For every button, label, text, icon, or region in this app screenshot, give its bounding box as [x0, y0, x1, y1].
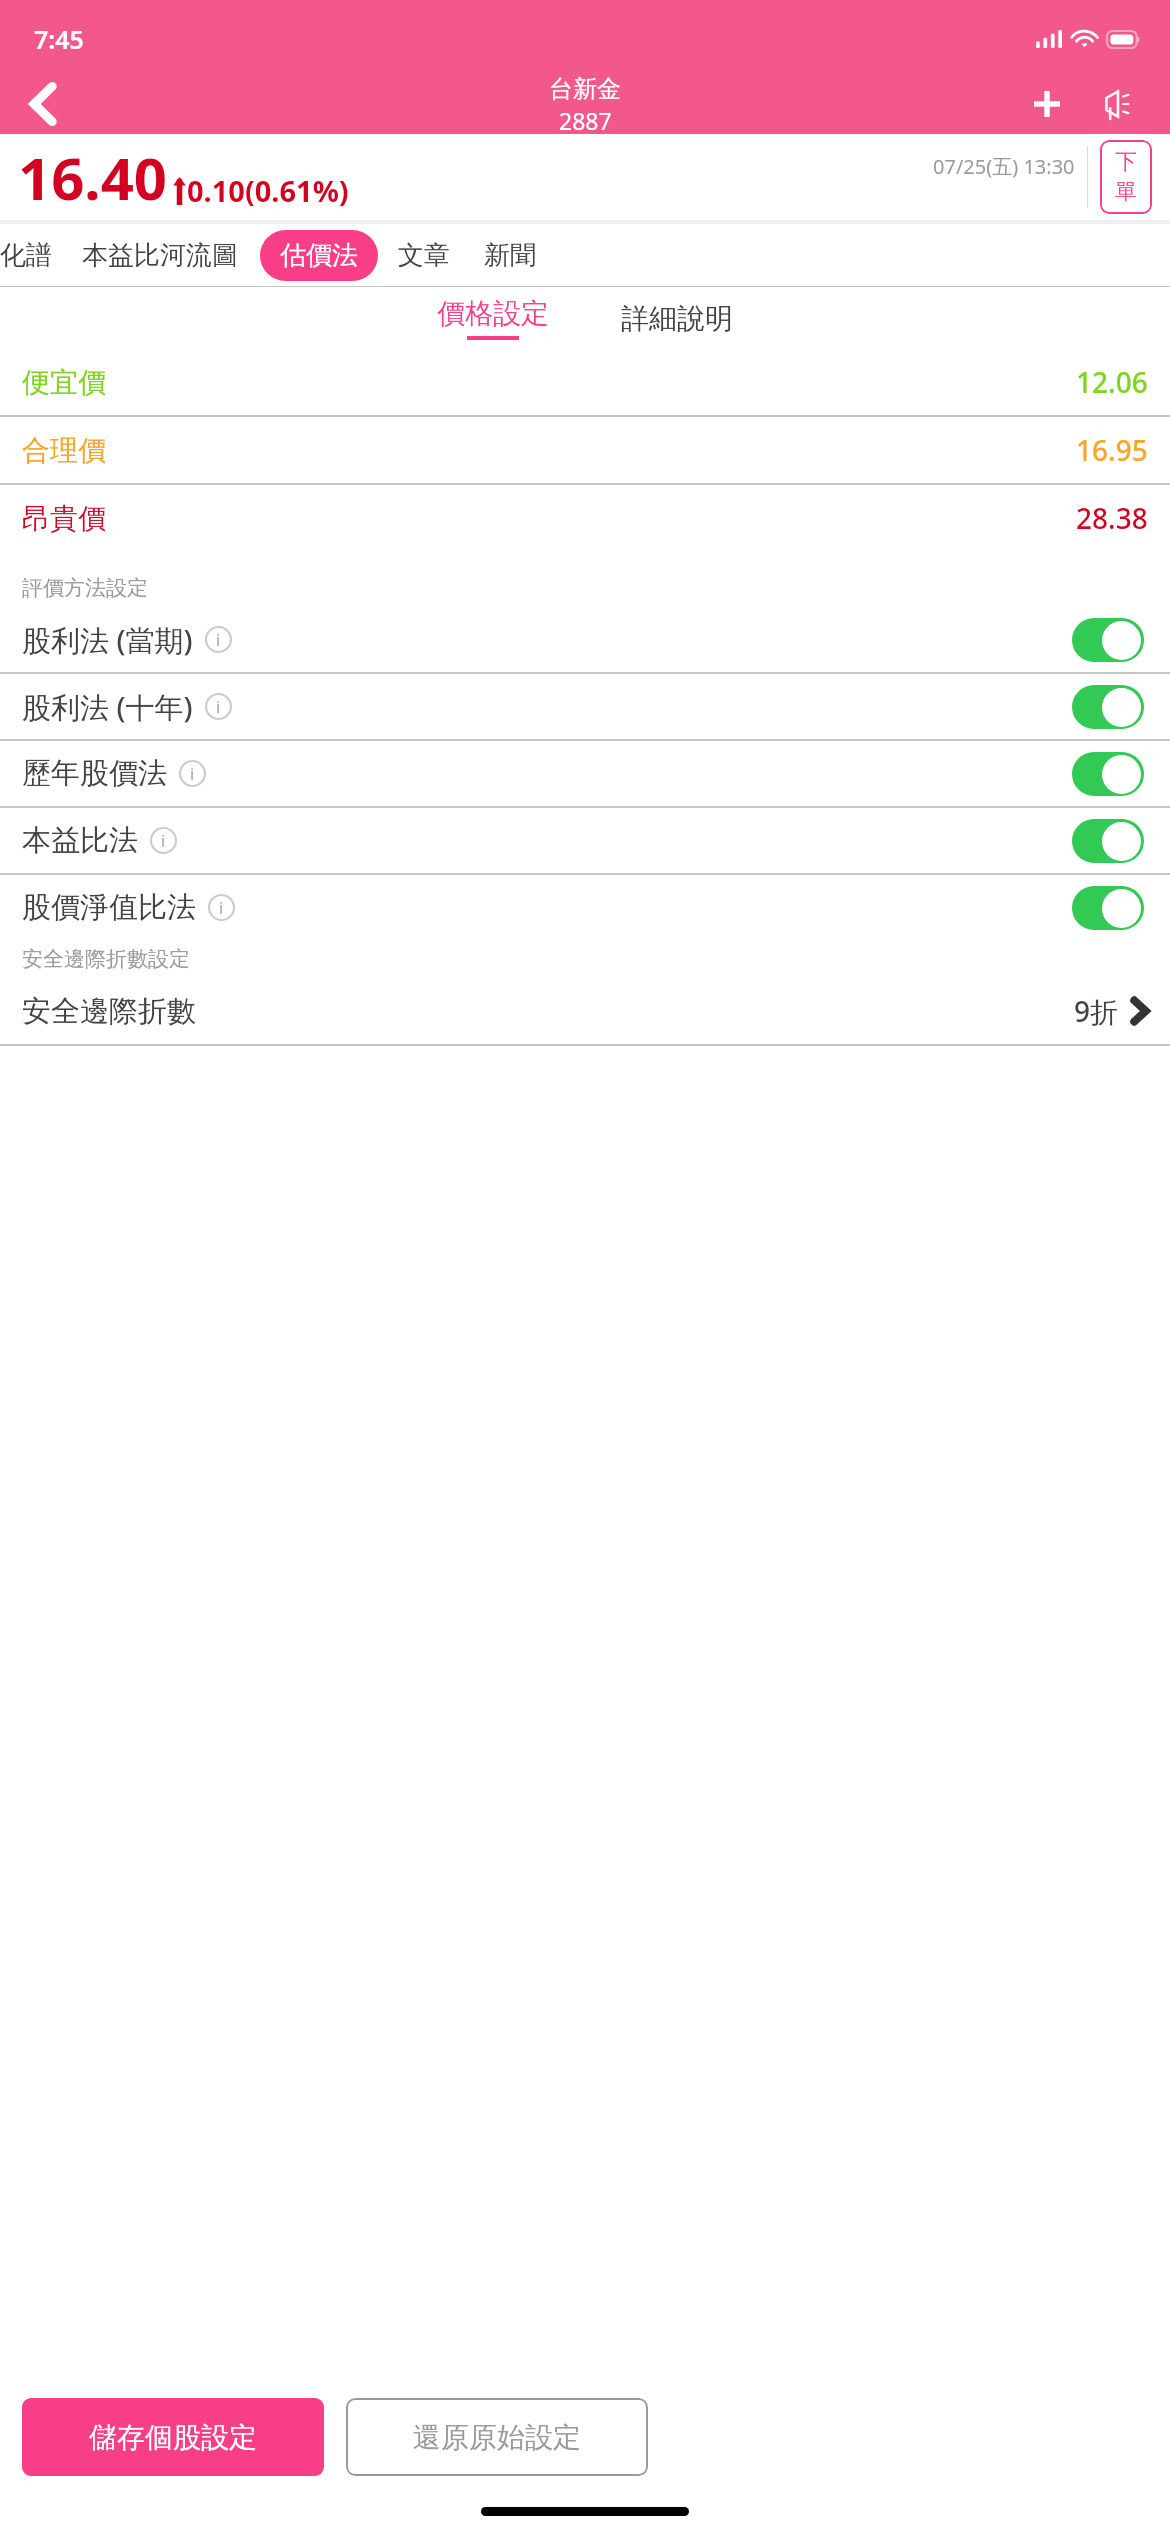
- staticText: 2887: [559, 105, 612, 134]
- staticText: 估價法: [280, 239, 358, 272]
- staticText: 07/25(五) 13:30: [933, 153, 1075, 180]
- button[interactable]: 化譜: [0, 239, 52, 272]
- button[interactable]: 股利法 (當期): [0, 607, 1170, 672]
- staticText: 28.38: [1076, 499, 1148, 537]
- staticText: 價格設定: [437, 296, 549, 331]
- button[interactable]: Info about 歷年股價法: [179, 760, 206, 787]
- button[interactable]: Back: [0, 74, 86, 134]
- button[interactable]: Info about 股價淨值比法: [208, 894, 235, 921]
- staticText: 本益比法: [22, 822, 138, 859]
- button[interactable]: 昂貴價: [0, 485, 1170, 551]
- button[interactable]: Info about 股利法 (十年): [205, 693, 232, 720]
- button[interactable]: Toggle on: [1072, 752, 1144, 796]
- button[interactable]: Info about 本益比法: [150, 827, 177, 854]
- button[interactable]: 價格設定: [429, 296, 557, 340]
- button[interactable]: 股價淨值比法: [0, 875, 1170, 940]
- staticText: 詳細說明: [621, 301, 733, 336]
- staticText: 台新金: [549, 74, 621, 104]
- staticText: 昂貴價: [22, 501, 106, 536]
- staticText: 新聞: [484, 239, 536, 272]
- staticText: i: [216, 696, 221, 718]
- staticText: 化譜: [0, 239, 52, 272]
- staticText: 0.10(0.61%): [187, 171, 349, 210]
- button[interactable]: 詳細說明: [613, 297, 741, 340]
- staticText: i: [219, 897, 224, 919]
- button[interactable]: 歷年股價法: [0, 741, 1170, 806]
- staticText: 儲存個股設定: [89, 2420, 257, 2455]
- staticText: 歷年股價法: [22, 755, 167, 792]
- staticText: 股價淨值比法: [22, 889, 196, 926]
- button[interactable]: 文章: [394, 239, 454, 272]
- staticText: i: [190, 763, 195, 785]
- staticText: 安全邊際折數: [22, 993, 196, 1030]
- button[interactable]: Add: [1018, 75, 1076, 133]
- staticText: 股利法 (當期): [22, 620, 193, 660]
- staticText: 還原原始設定: [413, 2420, 581, 2455]
- staticText: 文章: [398, 239, 450, 272]
- button[interactable]: 本益比河流圖: [78, 239, 242, 272]
- button[interactable]: Toggle on: [1072, 685, 1144, 729]
- staticText: 股利法 (十年): [22, 687, 193, 727]
- button[interactable]: Toggle on: [1072, 819, 1144, 863]
- button[interactable]: Announcements: [1090, 75, 1148, 133]
- button[interactable]: Toggle on: [1072, 886, 1144, 930]
- staticText: i: [216, 629, 221, 651]
- button[interactable]: 新聞: [480, 239, 540, 272]
- button[interactable]: Info about 股利法 (當期): [205, 626, 232, 653]
- button[interactable]: 便宜價: [0, 349, 1170, 415]
- staticText: 安全邊際折數設定: [22, 946, 190, 972]
- staticText: 7:45: [34, 22, 84, 56]
- staticText: 9折: [1074, 992, 1119, 1030]
- button[interactable]: 還原原始設定: [346, 2398, 648, 2476]
- staticText: 16.95: [1076, 431, 1148, 469]
- staticText: 本益比河流圖: [82, 239, 238, 272]
- staticText: 16.40: [18, 138, 168, 217]
- staticText: 12.06: [1076, 363, 1148, 401]
- staticText: 單: [1115, 178, 1137, 206]
- staticText: i: [161, 830, 166, 852]
- button[interactable]: 本益比法: [0, 808, 1170, 873]
- button[interactable]: 儲存個股設定: [22, 2398, 324, 2476]
- button[interactable]: 安全邊際折數: [0, 978, 1170, 1044]
- button[interactable]: 估價法: [260, 230, 378, 281]
- button[interactable]: 股利法 (十年): [0, 674, 1170, 739]
- staticText: 便宜價: [22, 365, 106, 400]
- staticText: 評價方法設定: [22, 575, 148, 601]
- button[interactable]: 合理價: [0, 417, 1170, 483]
- button[interactable]: 下: [1100, 140, 1152, 214]
- staticText: 下: [1115, 148, 1137, 176]
- button[interactable]: Toggle on: [1072, 618, 1144, 662]
- staticText: 合理價: [22, 433, 106, 468]
